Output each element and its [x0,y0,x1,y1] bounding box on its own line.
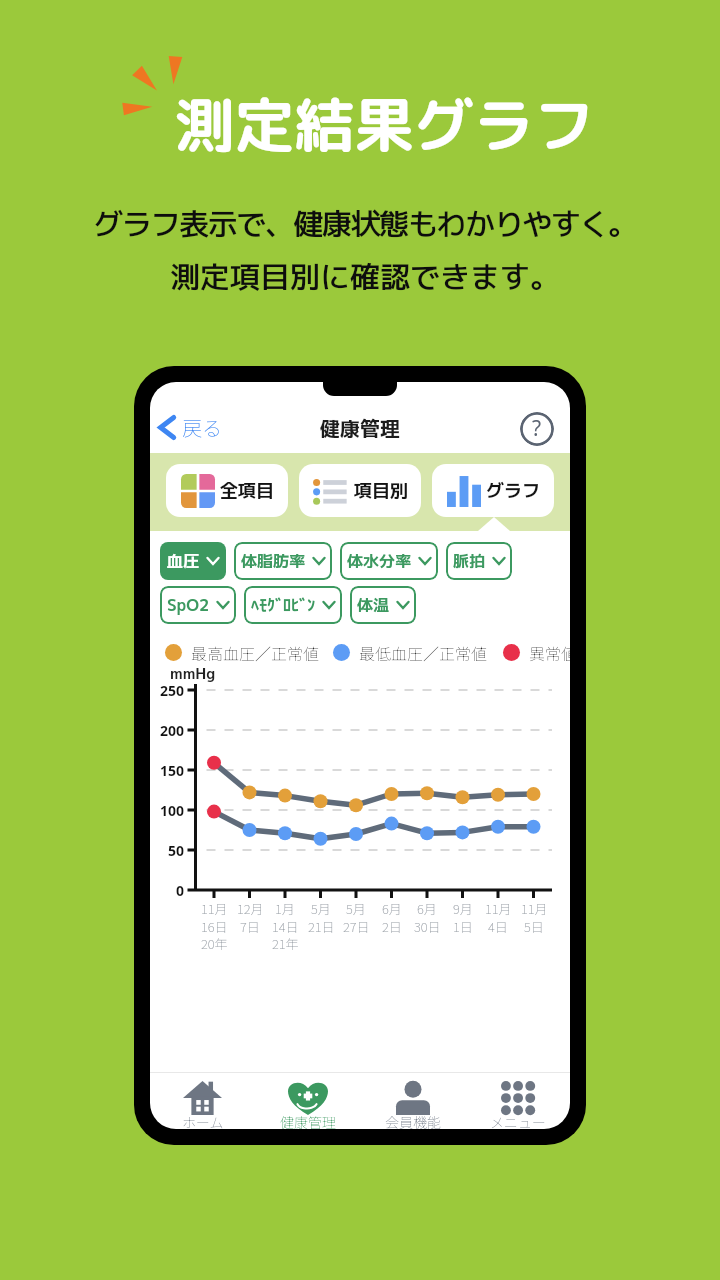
staticText: ホーム [182,1112,224,1129]
staticText: 健康管理 [280,1112,336,1129]
staticText: 200 [150,721,184,740]
staticText: 測定結果グラフ [24,82,720,166]
staticText: 2日 [382,917,402,936]
staticText: 7日 [240,917,260,936]
button[interactable]: 血圧 [160,542,226,580]
button[interactable]: Help [520,412,554,446]
staticText: ﾍﾓｸﾞﾛﾋﾞﾝ [251,594,316,616]
staticText: 11月 [521,899,548,918]
staticText: 項目別 [354,478,408,503]
staticText: グラフ [486,478,540,503]
staticText: 6月 [382,899,402,918]
staticText: 12月 [237,899,264,918]
staticText: 6月 [417,899,437,918]
staticText: 5月 [346,899,366,918]
button[interactable]: 体脂肪率 [234,542,332,580]
staticText: 異常値 [529,641,570,664]
button[interactable]: 脈拍 [446,542,512,580]
staticText: 体水分率 [347,550,412,572]
staticText: 健康管理 [320,414,400,442]
staticText: 測定項目別に確認できます。 [5,256,720,298]
staticText: ? [532,414,542,443]
button[interactable]: グラフ [432,464,554,517]
staticText: メニュー [490,1112,546,1129]
staticText: 5日 [524,917,544,936]
button[interactable]: 会員機能 [360,1073,465,1129]
button[interactable]: メニュー [465,1073,570,1129]
staticText: 9月 [453,899,473,918]
staticText: 30日 [414,917,441,936]
staticText: 11月 [485,899,512,918]
staticText: 14日 [272,917,299,936]
staticText: 100 [150,801,184,820]
staticText: グラフ表示で、健康状態もわかりやすく。 [5,203,720,245]
button[interactable]: ﾍﾓｸﾞﾛﾋﾞﾝ [244,586,342,624]
button[interactable]: ホーム [150,1073,255,1129]
staticText: 戻る [182,413,222,442]
button[interactable]: 体温 [350,586,416,624]
staticText: mmHg [170,663,216,684]
staticText: 150 [150,761,184,780]
button[interactable]: 項目別 [299,464,421,517]
button[interactable]: SpO2 [160,586,236,624]
staticText: 20年 [201,934,228,953]
staticText: SpO2 [167,594,210,616]
staticText: 脈拍 [453,550,486,572]
staticText: 1日 [453,917,473,936]
button[interactable]: 健康管理 [255,1073,360,1129]
staticText: 4日 [488,917,508,936]
staticText: 体脂肪率 [241,550,306,572]
staticText: 27日 [343,917,370,936]
staticText: 11月 [201,899,228,918]
staticText: 21日 [308,917,335,936]
staticText: 全項目 [220,478,274,503]
staticText: 16日 [201,917,228,936]
staticText: 最低血圧／正常値 [359,641,488,664]
staticText: 会員機能 [385,1112,441,1129]
button[interactable]: 体水分率 [340,542,438,580]
staticText: 250 [150,681,184,700]
staticText: 5月 [311,899,331,918]
staticText: 0 [150,881,184,900]
staticText: 21年 [272,934,299,953]
button[interactable]: 全項目 [166,464,288,517]
staticText: 1月 [275,899,295,918]
staticText: 血圧 [167,550,200,572]
staticText: 最高血圧／正常値 [191,641,320,664]
staticText: 体温 [357,594,390,616]
button[interactable]: 戻る [150,406,231,449]
staticText: 50 [150,841,184,860]
